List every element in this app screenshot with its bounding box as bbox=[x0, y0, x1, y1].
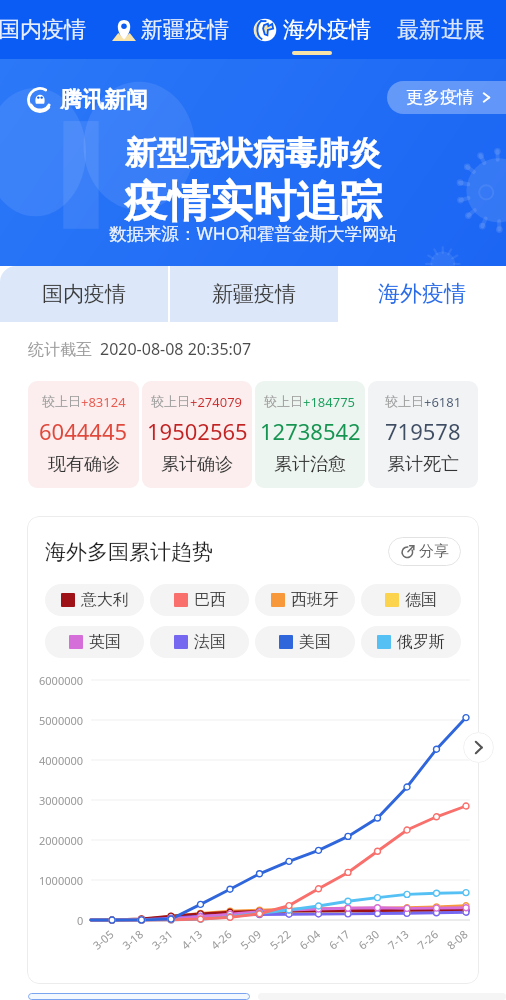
staticText: 西班牙 bbox=[291, 590, 339, 610]
staticText: 俄罗斯 bbox=[397, 632, 445, 652]
button[interactable]: 法国 bbox=[150, 626, 249, 658]
staticText: 较上日 bbox=[42, 393, 81, 409]
staticText: 海外疫情 bbox=[283, 16, 371, 44]
staticText: 累计死亡 bbox=[387, 453, 459, 476]
staticText: 较上日 bbox=[385, 393, 424, 409]
staticText: 腾讯新闻 bbox=[60, 86, 148, 114]
staticText: 疫情实时追踪 bbox=[124, 175, 382, 229]
button[interactable]: 新疆疫情 bbox=[170, 266, 338, 322]
staticText: 分享 bbox=[419, 542, 449, 561]
button[interactable]: 较上日 bbox=[28, 381, 139, 488]
button[interactable]: 意大利 bbox=[45, 584, 144, 616]
staticText: 数据来源：WHO和霍普金斯大学网站 bbox=[109, 221, 397, 245]
button[interactable]: 国内疫情 bbox=[0, 0, 112, 59]
staticText: 19502565 bbox=[147, 416, 248, 446]
staticText: 法国 bbox=[194, 632, 226, 652]
staticText: 新型冠状病毒肺炎 bbox=[125, 133, 381, 173]
button[interactable]: 分享 bbox=[388, 537, 461, 566]
button[interactable]: 美国 bbox=[255, 626, 355, 658]
button[interactable]: 较上日 bbox=[368, 381, 478, 488]
staticText: 较上日 bbox=[264, 393, 303, 409]
button[interactable]: 英国 bbox=[45, 626, 144, 658]
staticText: 12738542 bbox=[260, 416, 361, 446]
staticText: 巴西 bbox=[194, 590, 226, 610]
button[interactable]: Next chart bbox=[463, 732, 494, 763]
staticText: 海外多国累计趋势 bbox=[45, 539, 213, 565]
staticText: 现有确诊 bbox=[48, 453, 120, 476]
staticText: 较上日 bbox=[151, 393, 190, 409]
staticText: +83124 bbox=[81, 393, 126, 411]
button[interactable]: 俄罗斯 bbox=[361, 626, 461, 658]
button[interactable]: 更多疫情 bbox=[387, 81, 506, 114]
staticText: 统计截至 bbox=[28, 340, 92, 360]
button[interactable]: 西班牙 bbox=[255, 584, 355, 616]
staticText: 累计治愈 bbox=[274, 453, 346, 476]
button[interactable]: 海外疫情 bbox=[253, 0, 371, 59]
staticText: +184775 bbox=[303, 393, 356, 411]
staticText: +6181 bbox=[424, 393, 462, 411]
staticText: 更多疫情 bbox=[406, 87, 474, 108]
staticText: 2020-08-08 20:35:07 bbox=[100, 338, 252, 360]
staticText: 累计确诊 bbox=[161, 453, 233, 476]
staticText: 新疆疫情 bbox=[212, 281, 296, 307]
staticText: 意大利 bbox=[81, 590, 129, 610]
button[interactable]: 德国 bbox=[361, 584, 461, 616]
staticText: 719578 bbox=[385, 416, 461, 446]
staticText: 英国 bbox=[89, 632, 121, 652]
staticText: 德国 bbox=[405, 590, 437, 610]
staticText: 6044445 bbox=[39, 416, 128, 446]
button[interactable]: 最新进展 bbox=[397, 0, 485, 59]
staticText: 最新进展 bbox=[397, 16, 485, 44]
button[interactable]: 较上日 bbox=[255, 381, 365, 488]
button[interactable] bbox=[28, 993, 250, 1000]
staticText: +274079 bbox=[190, 393, 243, 411]
button[interactable]: 较上日 bbox=[142, 381, 252, 488]
button[interactable]: 海外疫情 bbox=[338, 266, 506, 322]
staticText: 国内疫情 bbox=[42, 281, 126, 307]
button[interactable]: 巴西 bbox=[150, 584, 249, 616]
staticText: 新疆疫情 bbox=[141, 16, 229, 44]
staticText: 美国 bbox=[299, 632, 331, 652]
staticText: 国内疫情 bbox=[0, 16, 86, 44]
button[interactable]: 新疆疫情 bbox=[112, 0, 229, 59]
button[interactable]: 国内疫情 bbox=[0, 266, 168, 322]
staticText: 海外疫情 bbox=[378, 280, 466, 308]
